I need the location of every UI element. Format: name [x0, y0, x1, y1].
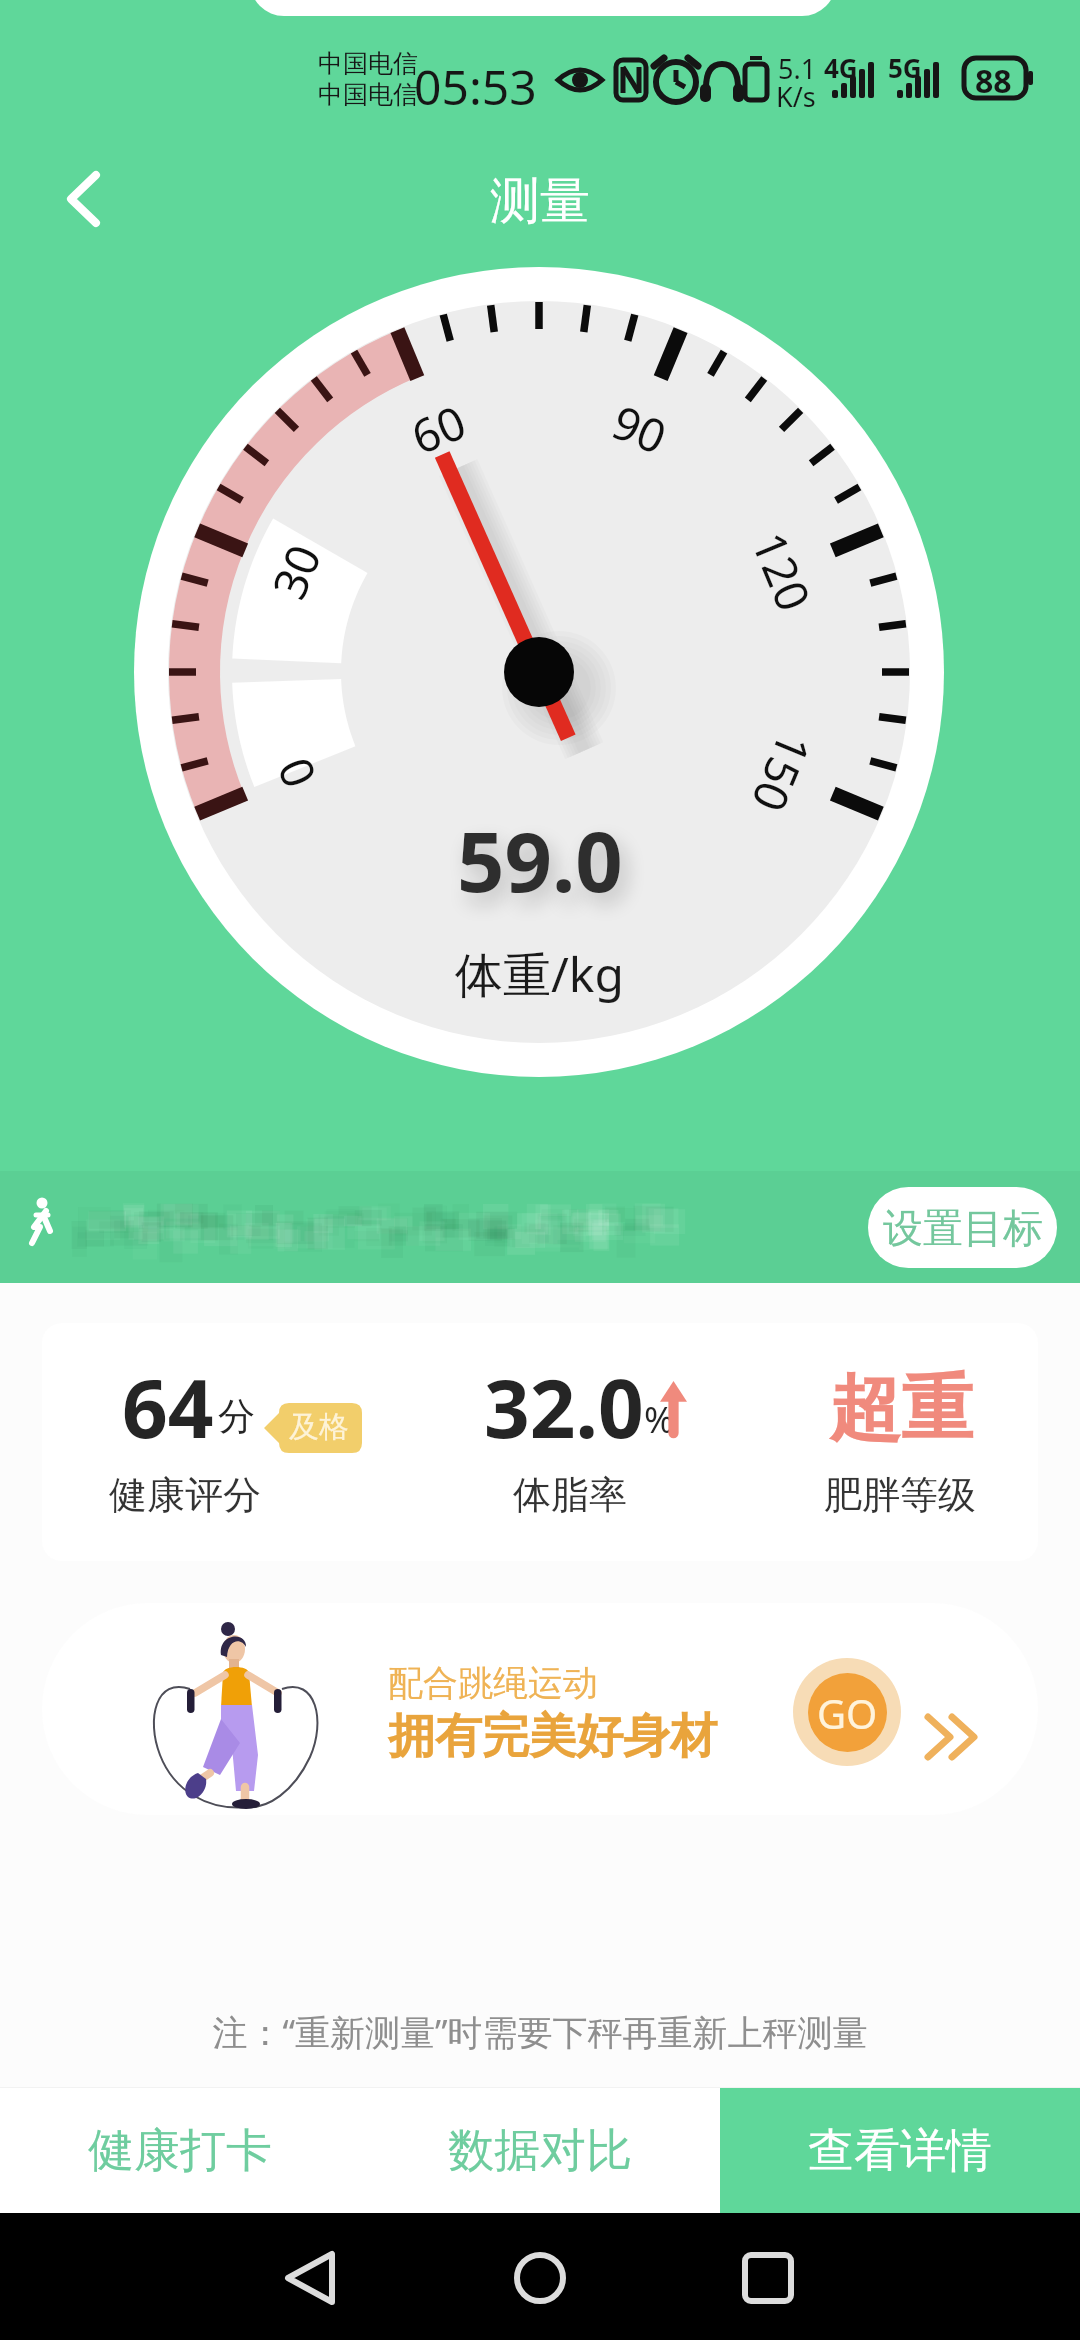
staticText: 体脂率 — [513, 1471, 627, 1519]
staticText: 查看详情 — [808, 2122, 992, 2180]
staticText: 59.0 — [457, 803, 623, 916]
staticText: 配合跳绳运动 — [388, 1661, 598, 1705]
button[interactable]: Back — [259, 2228, 359, 2328]
staticText: 数据对比 — [448, 2122, 632, 2180]
button[interactable]: 数据对比 — [360, 2088, 720, 2213]
button[interactable]: 配合跳绳运动 — [42, 1603, 1038, 1815]
staticText: 分 — [218, 1393, 255, 1440]
staticText: 05:53 — [414, 54, 537, 119]
staticText: 88 — [975, 59, 1012, 103]
staticText: 注：“重新测量”时需要下秤再重新上秤测量 — [0, 2008, 1080, 2056]
button[interactable]: Home — [490, 2228, 590, 2328]
staticText: 32.0 — [484, 1352, 644, 1461]
staticText: % — [644, 1395, 674, 1444]
staticText: 5G — [888, 50, 922, 85]
staticText: 拥有完美好身材 — [388, 1707, 717, 1766]
staticText: 健康评分 — [109, 1471, 261, 1519]
button[interactable]: 设置目标 — [868, 1187, 1057, 1268]
staticText: GO — [817, 1686, 878, 1740]
button[interactable]: 64 — [42, 1323, 1038, 1561]
staticText: 测量 — [490, 170, 590, 233]
staticText: 设置目标 — [883, 1203, 1043, 1253]
staticText: 超重 — [829, 1364, 973, 1455]
button[interactable]: Back — [40, 159, 120, 239]
staticText: 体重/kg — [455, 941, 625, 1007]
staticText: 64 — [122, 1352, 214, 1461]
button[interactable]: Recents — [718, 2228, 818, 2328]
staticText: 4G — [824, 50, 858, 85]
staticText: 肥胖等级 — [824, 1471, 976, 1519]
staticText: 及格 — [289, 1408, 349, 1446]
button[interactable]: GO — [793, 1658, 901, 1766]
button[interactable]: 健康打卡 — [0, 2088, 360, 2213]
staticText: K/s — [776, 78, 816, 115]
staticText: 中国电信 — [318, 79, 418, 110]
staticText: 健康打卡 — [88, 2122, 272, 2180]
staticText: 中国电信 — [318, 48, 418, 79]
staticText: 5.1 — [778, 50, 817, 87]
button[interactable]: 查看详情 — [720, 2088, 1080, 2213]
